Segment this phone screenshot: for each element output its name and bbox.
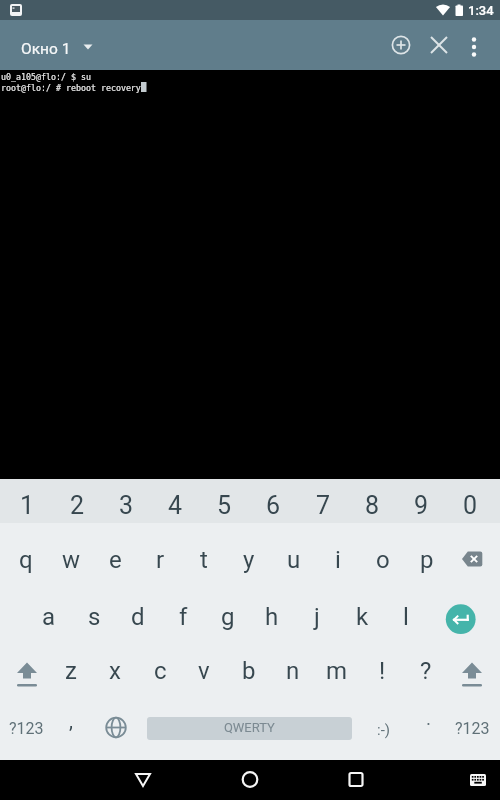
button[interactable] (383, 27, 419, 63)
button[interactable]: n (271, 641, 315, 700)
button[interactable] (230, 760, 270, 800)
button[interactable]: u (272, 530, 316, 589)
staticText: · (426, 713, 431, 735)
staticText: f (179, 603, 188, 631)
button[interactable] (93, 701, 139, 760)
button[interactable]: 8 (348, 483, 397, 527)
button[interactable]: h (250, 587, 294, 646)
staticText: 4 (168, 491, 183, 520)
staticText: d (131, 603, 145, 631)
button[interactable]: k (340, 587, 384, 646)
button[interactable] (336, 760, 376, 800)
staticText: , (69, 709, 73, 732)
button[interactable] (4, 642, 50, 701)
staticText: a (42, 603, 56, 631)
staticText: y (243, 546, 255, 574)
button[interactable] (123, 760, 163, 800)
button[interactable]: 0 (446, 483, 495, 527)
staticText: u0_a105@flo:/ $ su (1, 72, 91, 82)
button[interactable] (449, 642, 495, 701)
button[interactable] (458, 29, 490, 61)
button[interactable] (421, 27, 457, 63)
button[interactable]: s (72, 587, 116, 646)
button[interactable]: x (93, 641, 137, 700)
button[interactable]: 6 (249, 483, 298, 527)
button[interactable]: m (315, 641, 359, 700)
button[interactable]: a (27, 587, 71, 646)
staticText: z (65, 657, 77, 685)
staticText: u (287, 546, 301, 574)
button[interactable]: , (51, 691, 91, 750)
button[interactable]: w (49, 530, 93, 589)
staticText: l (403, 603, 409, 631)
button[interactable]: ? (404, 641, 448, 700)
button[interactable]: q (4, 530, 48, 589)
button[interactable]: v (182, 641, 226, 700)
button[interactable]: 9 (397, 483, 446, 527)
staticText: ? (420, 657, 432, 685)
staticText: r (156, 546, 165, 574)
staticText: e (109, 546, 122, 574)
button[interactable]: f (161, 587, 205, 646)
button[interactable]: b (227, 641, 271, 700)
staticText: 0 (463, 491, 478, 520)
staticText: m (326, 657, 348, 685)
button[interactable] (462, 766, 494, 794)
button[interactable]: p (405, 530, 449, 589)
button[interactable]: 3 (102, 483, 151, 527)
staticText: 2 (70, 491, 85, 520)
staticText: n (286, 657, 300, 685)
button[interactable] (436, 582, 486, 641)
button[interactable]: t (182, 530, 226, 589)
button[interactable]: z (49, 641, 93, 700)
button[interactable]: o (361, 530, 405, 589)
button[interactable]: r (138, 530, 182, 589)
staticText: p (420, 546, 434, 574)
staticText: ?123 (455, 719, 490, 738)
staticText: QWERTY (224, 720, 275, 735)
staticText: 3 (119, 491, 134, 520)
staticText: 8 (365, 491, 380, 520)
button[interactable]: y (227, 530, 271, 589)
staticText: 6 (266, 491, 281, 520)
staticText: 5 (217, 491, 232, 520)
staticText: h (265, 603, 279, 631)
staticText: b (242, 657, 256, 685)
staticText: j (314, 603, 320, 631)
button[interactable]: j (295, 587, 339, 646)
staticText: 7 (316, 491, 331, 520)
staticText: k (356, 603, 369, 631)
button[interactable]: c (138, 641, 182, 700)
button[interactable]: 7 (299, 483, 348, 527)
staticText: v (198, 657, 210, 685)
staticText: Окно 1 (21, 40, 71, 58)
button[interactable]: 1 (3, 483, 52, 527)
button[interactable]: g (206, 587, 250, 646)
button[interactable]: Окно 1 (16, 32, 100, 66)
staticText: c (154, 657, 167, 685)
staticText: root@flo:/ # reboot recovery (1, 83, 141, 93)
button[interactable]: :-) (362, 700, 406, 759)
staticText: :-) (377, 721, 391, 739)
button[interactable]: d (116, 587, 160, 646)
button[interactable]: e (93, 530, 137, 589)
staticText: i (335, 546, 341, 574)
button[interactable]: 5 (200, 483, 249, 527)
button[interactable]: ?123 (3, 699, 49, 758)
button[interactable]: l (384, 587, 428, 646)
button[interactable]: 2 (53, 483, 102, 527)
staticText: s (88, 603, 101, 631)
button[interactable]: i (316, 530, 360, 589)
button[interactable]: · (408, 694, 448, 753)
button[interactable]: QWERTY (147, 717, 352, 740)
staticText: ?123 (9, 719, 44, 738)
button[interactable]: ?123 (449, 699, 495, 758)
staticText: g (221, 603, 235, 631)
button[interactable]: 4 (151, 483, 200, 527)
button[interactable]: ! (360, 641, 404, 700)
button[interactable] (450, 523, 500, 582)
staticText: 1 (20, 491, 35, 520)
staticText: o (376, 546, 390, 574)
staticText: t (200, 546, 208, 574)
staticText: 1:34 (468, 3, 494, 18)
